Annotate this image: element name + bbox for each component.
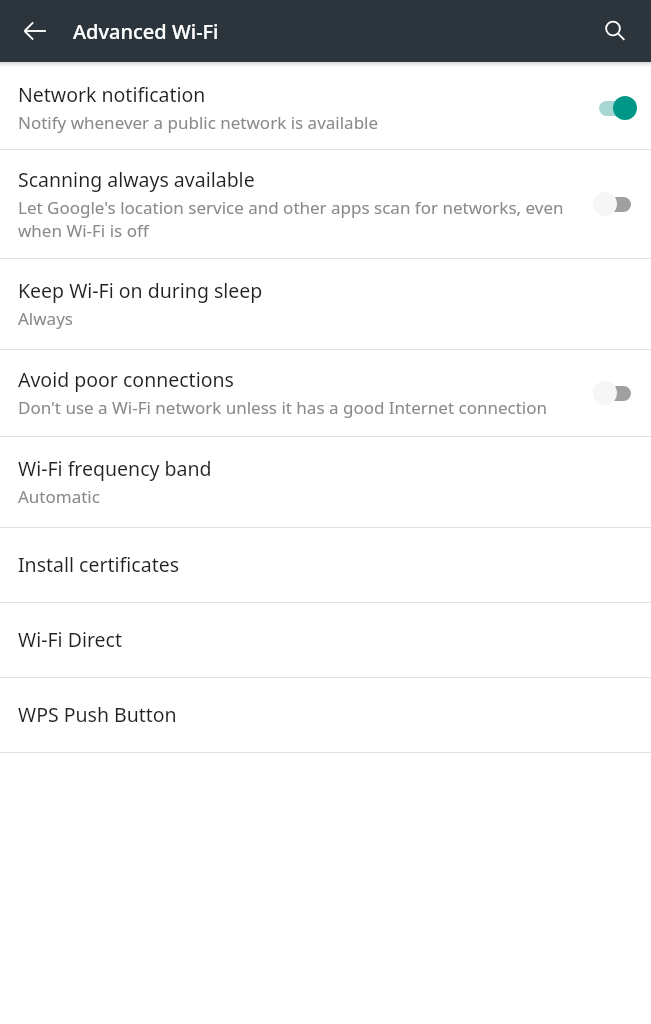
staticText: Automatic: [18, 485, 100, 508]
button[interactable]: Wi-Fi frequency band: [0, 437, 651, 527]
button[interactable]: Avoid poor connections: [0, 350, 651, 436]
staticText: Scanning always available: [18, 166, 255, 193]
button[interactable]: Wi-Fi Direct: [0, 603, 651, 677]
staticText: Notify whenever a public network is avai…: [18, 111, 379, 134]
button[interactable]: Back: [13, 9, 57, 53]
staticText: Avoid poor connections: [18, 366, 234, 393]
button[interactable]: WPS Push Button: [0, 678, 651, 752]
button[interactable]: Scanning always available: [0, 150, 651, 258]
staticText: Always: [18, 307, 73, 330]
staticText: Don't use a Wi-Fi network unless it has …: [18, 396, 548, 419]
staticText: Advanced Wi-Fi: [73, 18, 219, 45]
staticText: Wi-Fi Direct: [18, 626, 122, 653]
staticText: Wi-Fi frequency band: [18, 455, 212, 482]
button[interactable]: Keep Wi-Fi on during sleep: [0, 259, 651, 349]
staticText: Keep Wi-Fi on during sleep: [18, 277, 263, 304]
staticText: Let Google's location service and other …: [18, 196, 583, 242]
button[interactable]: Search: [593, 9, 637, 53]
staticText: WPS Push Button: [18, 701, 177, 728]
button[interactable]: Install certificates: [0, 528, 651, 602]
button[interactable]: Network notification: [0, 67, 651, 149]
staticText: Install certificates: [18, 551, 180, 578]
staticText: Network notification: [18, 81, 206, 108]
